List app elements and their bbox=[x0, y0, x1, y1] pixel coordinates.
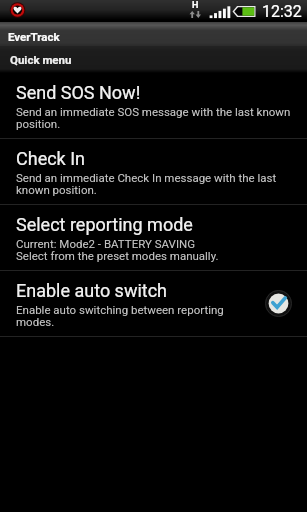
button[interactable]: Enable auto switch bbox=[0, 271, 307, 336]
staticText: Quick menu bbox=[10, 53, 72, 66]
staticText: 12:32 bbox=[262, 2, 302, 21]
button[interactable]: Select reporting mode bbox=[0, 205, 307, 270]
staticText: Enable auto switch bbox=[16, 280, 168, 301]
staticText: EverTrack bbox=[8, 30, 60, 43]
staticText: Send SOS Now! bbox=[16, 82, 141, 103]
staticText: Send an immediate Check In message with … bbox=[16, 171, 277, 196]
staticText: H bbox=[192, 0, 199, 11]
staticText: Current: Mode2 - BATTERY SAVING Select f… bbox=[16, 237, 219, 262]
staticText: Check In bbox=[16, 148, 86, 169]
staticText: Enable auto switching between reporting … bbox=[16, 303, 224, 328]
button[interactable]: Send SOS Now! bbox=[0, 73, 307, 138]
staticText: Send an immediate SOS message with the l… bbox=[16, 105, 291, 130]
staticText: Select reporting mode bbox=[16, 214, 193, 235]
button[interactable]: Check In bbox=[0, 139, 307, 204]
